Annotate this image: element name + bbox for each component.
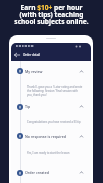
staticText: Thank E. gave you a 5-star rating and wr… bbox=[27, 85, 83, 89]
staticText: you, thank you! bbox=[27, 93, 47, 97]
button[interactable]: Order created bbox=[11, 162, 91, 183]
staticText: My review bbox=[25, 69, 43, 74]
staticText: No response is required bbox=[25, 134, 66, 139]
staticText: Earn $10+ per hour (with tips) teaching … bbox=[14, 3, 89, 26]
staticText: Yes, I am ready to start the lesson bbox=[27, 151, 70, 155]
staticText: Tip bbox=[25, 104, 31, 109]
staticText: Order created bbox=[25, 170, 50, 175]
button[interactable]: No response is required bbox=[11, 128, 91, 144]
staticText: Order detail bbox=[23, 53, 40, 57]
staticText: the following: Session "final session wi… bbox=[27, 89, 78, 93]
button[interactable]: Tip bbox=[11, 98, 91, 115]
staticText: Congratulations you have received a $3 t… bbox=[27, 120, 81, 124]
button[interactable]: Back bbox=[13, 51, 21, 59]
button[interactable]: My review bbox=[11, 61, 91, 81]
